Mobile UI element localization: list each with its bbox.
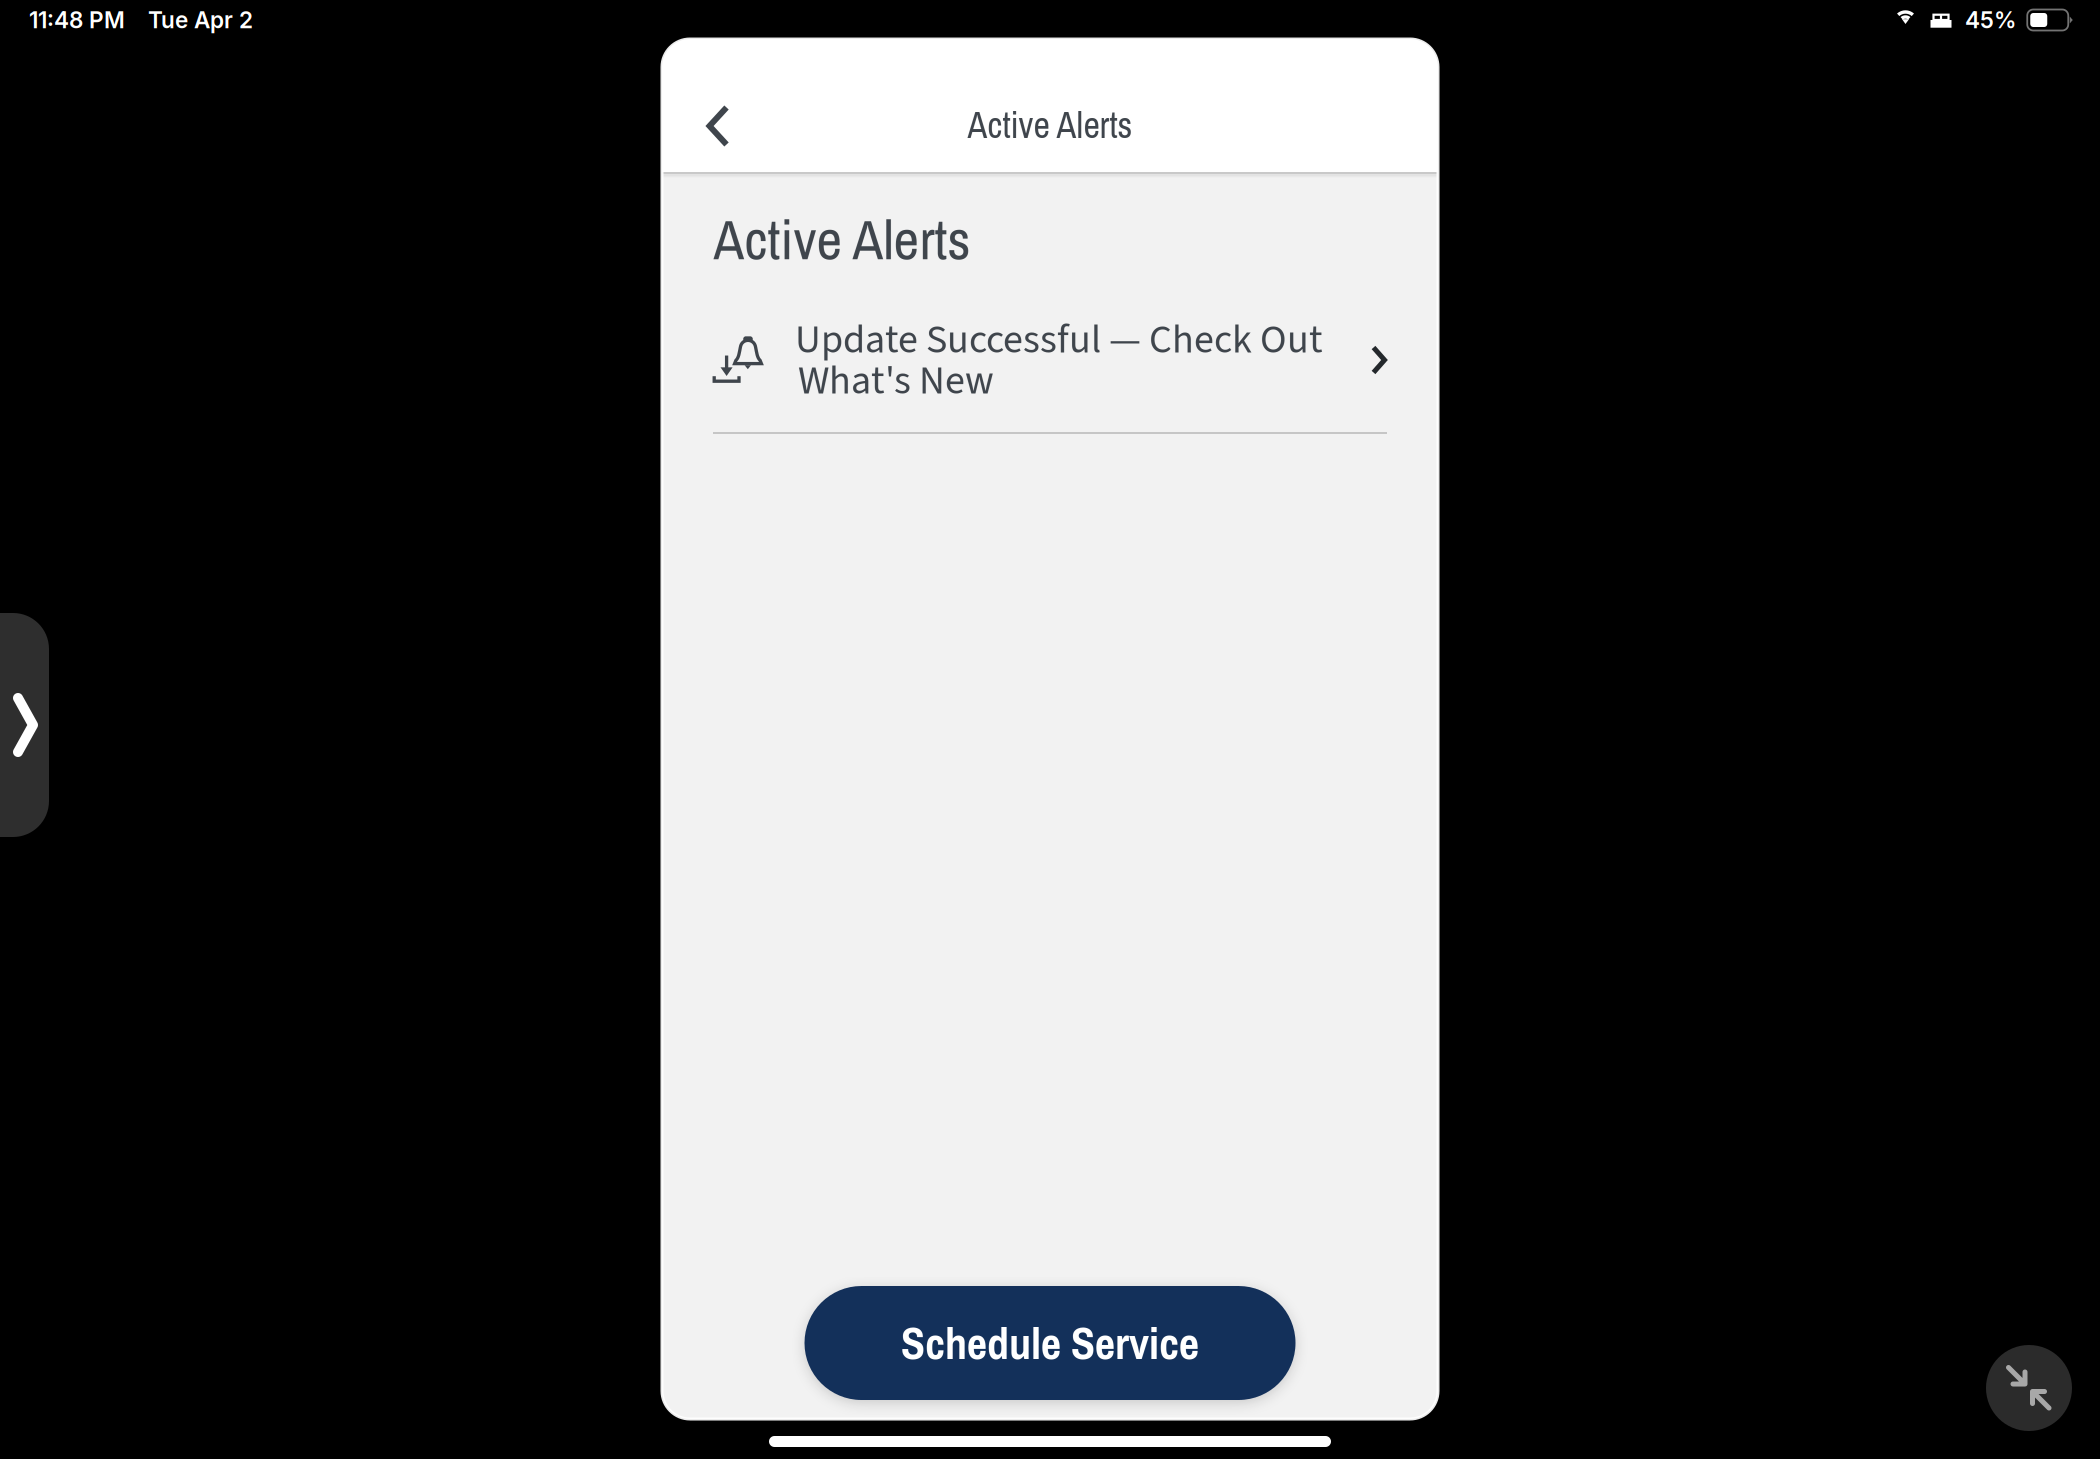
staticText: Update Successful — Check Out [795, 311, 1323, 368]
staticText: Schedule Service [901, 1313, 1199, 1373]
button[interactable]: Show Slide Over app [0, 613, 50, 837]
staticText: Active Alerts [713, 201, 970, 277]
button[interactable]: Update Successful — Check Out [662, 300, 1438, 420]
staticText: Tue Apr 2 [148, 6, 253, 34]
staticText: 11:48 PM [29, 6, 125, 34]
button[interactable]: Minimize window [1986, 1345, 2072, 1431]
button[interactable]: Schedule Service [804, 1286, 1295, 1400]
staticText: Active Alerts [967, 101, 1132, 149]
staticText: What's New [798, 352, 994, 409]
button[interactable]: Back [672, 78, 764, 174]
staticText: 45% [1965, 6, 2016, 34]
